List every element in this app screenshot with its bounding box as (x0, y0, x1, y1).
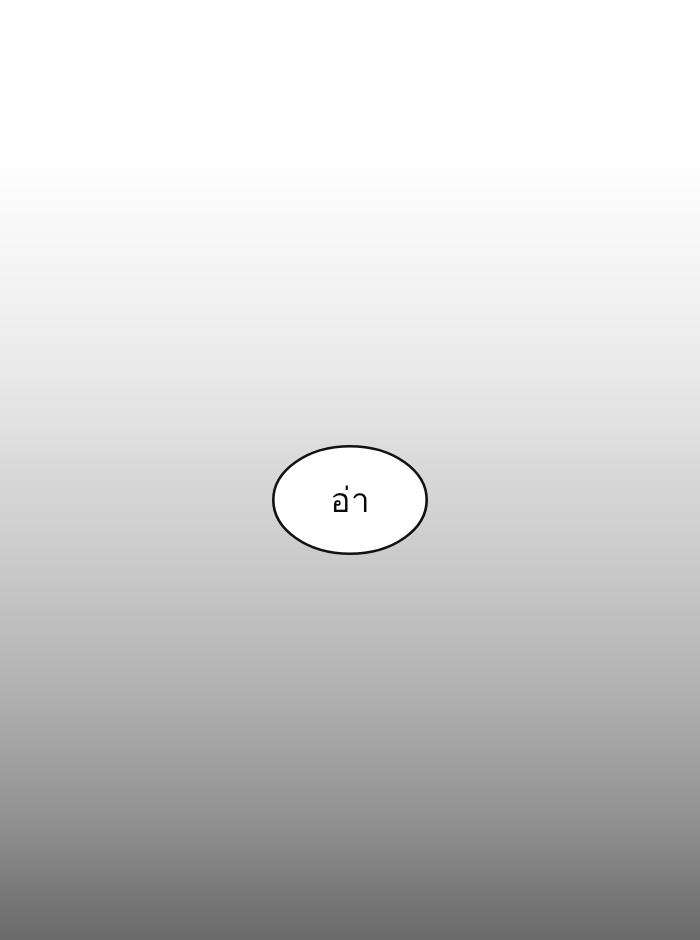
button[interactable]: อ่า (272, 445, 428, 555)
staticText: อ่า (330, 473, 370, 527)
